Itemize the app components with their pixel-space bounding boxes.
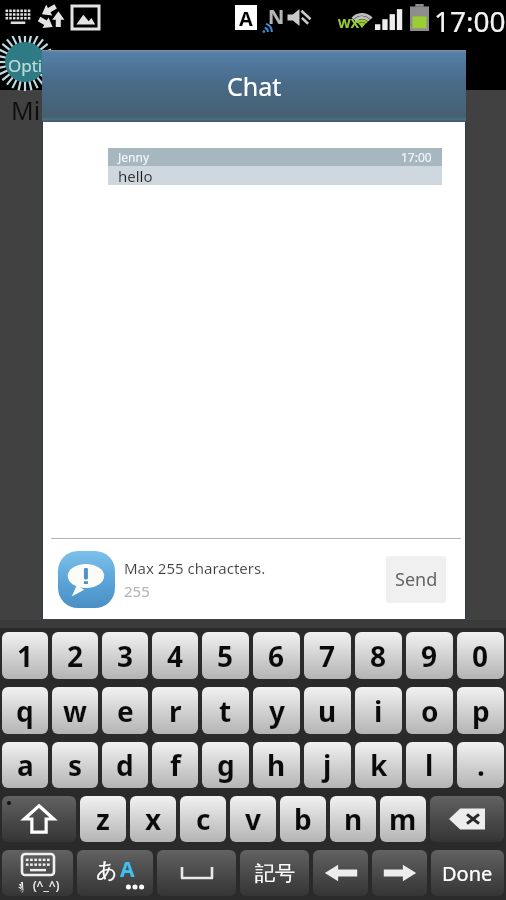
staticText: (^_^) (33, 877, 60, 893)
button[interactable]: d (102, 742, 148, 788)
staticText: s (68, 746, 83, 784)
staticText: b (294, 800, 312, 838)
staticText: 6 (268, 637, 285, 675)
button[interactable]: Left arrow (313, 850, 368, 896)
staticText: Chat (227, 69, 282, 103)
staticText: 4 (167, 637, 184, 675)
button[interactable]: Input mode (77, 850, 153, 896)
staticText: Done (442, 860, 493, 887)
button[interactable]: g (202, 742, 249, 788)
staticText: q (16, 692, 34, 730)
staticText: 9 (421, 637, 438, 675)
staticText: c (196, 800, 211, 838)
staticText: w (63, 692, 87, 730)
button[interactable]: z (80, 796, 126, 842)
staticText: Max 255 characters. (124, 558, 266, 578)
button[interactable]: 4 (152, 632, 198, 679)
staticText: e (117, 692, 134, 730)
staticText: x (145, 800, 162, 838)
button[interactable]: Symbols (240, 850, 309, 896)
staticText: A (239, 5, 253, 30)
button[interactable]: Send (386, 556, 446, 603)
staticText: d (116, 746, 134, 784)
button[interactable]: 2 (52, 632, 98, 679)
button[interactable]: c (180, 796, 226, 842)
button[interactable]: Done (431, 850, 504, 896)
staticText: y (269, 692, 285, 730)
staticText: g (217, 746, 235, 784)
staticText: t (219, 692, 232, 730)
staticText: r (169, 692, 182, 730)
button[interactable]: Space (157, 850, 236, 896)
button[interactable]: j (304, 742, 351, 788)
staticText: 2 (67, 637, 84, 675)
staticText: hello (118, 166, 153, 185)
button[interactable]: 8 (355, 632, 402, 679)
staticText: 3 (117, 637, 134, 675)
staticText: h (267, 746, 286, 784)
button[interactable]: v (230, 796, 276, 842)
button[interactable]: 7 (304, 632, 351, 679)
staticText: k (370, 746, 388, 784)
staticText: 7 (319, 637, 336, 675)
staticText: n (344, 800, 363, 838)
button[interactable]: 0 (457, 632, 504, 679)
staticText: あ (96, 857, 118, 883)
staticText: Send (395, 567, 438, 592)
button[interactable]: u (304, 687, 351, 734)
staticText: 255 (124, 581, 150, 601)
staticText: 8 (370, 637, 387, 675)
staticText: v (245, 800, 261, 838)
button[interactable]: Right arrow (372, 850, 427, 896)
staticText: WX (338, 14, 360, 32)
button[interactable]: 3 (102, 632, 148, 679)
button[interactable]: 9 (406, 632, 453, 679)
button[interactable]: x (130, 796, 176, 842)
staticText: 17:00 (434, 2, 506, 38)
button[interactable]: r (152, 687, 198, 734)
button[interactable]: a (2, 742, 48, 788)
button[interactable]: Shift (2, 796, 76, 842)
button[interactable]: q (2, 687, 48, 734)
button[interactable]: n (330, 796, 376, 842)
staticText: f (170, 746, 181, 784)
staticText: u (318, 692, 337, 730)
staticText: Jenny (118, 149, 149, 165)
button[interactable]: b (280, 796, 326, 842)
button[interactable]: i (355, 687, 402, 734)
button[interactable]: l (406, 742, 453, 788)
staticText: 5 (217, 637, 234, 675)
button[interactable]: m (380, 796, 426, 842)
staticText: 1 (17, 637, 34, 675)
staticText: z (96, 800, 110, 838)
staticText: l (425, 746, 434, 784)
button[interactable]: e (102, 687, 148, 734)
button[interactable]: o (406, 687, 453, 734)
button[interactable]: y (253, 687, 300, 734)
button[interactable]: 5 (202, 632, 249, 679)
button[interactable]: s (52, 742, 98, 788)
staticText: o (421, 692, 439, 730)
staticText: m (389, 800, 417, 838)
staticText: N (268, 3, 285, 30)
button[interactable]: p (457, 687, 504, 734)
staticText: j (323, 746, 332, 784)
button[interactable]: . (457, 742, 504, 788)
staticText: . (477, 746, 485, 784)
button[interactable]: Message info (58, 551, 115, 608)
button[interactable]: t (202, 687, 249, 734)
button[interactable]: w (52, 687, 98, 734)
staticText: Optia (8, 54, 52, 77)
staticText: Mik (11, 93, 54, 127)
staticText: i (374, 692, 383, 730)
staticText: 17:00 (401, 149, 432, 165)
staticText: A (120, 855, 135, 884)
button[interactable]: Backspace (430, 796, 504, 842)
button[interactable]: 6 (253, 632, 300, 679)
staticText: 0 (472, 637, 489, 675)
button[interactable]: h (253, 742, 300, 788)
button[interactable]: 1 (2, 632, 48, 679)
button[interactable]: Keyboard settings (2, 850, 73, 896)
button[interactable]: f (152, 742, 198, 788)
button[interactable]: k (355, 742, 402, 788)
